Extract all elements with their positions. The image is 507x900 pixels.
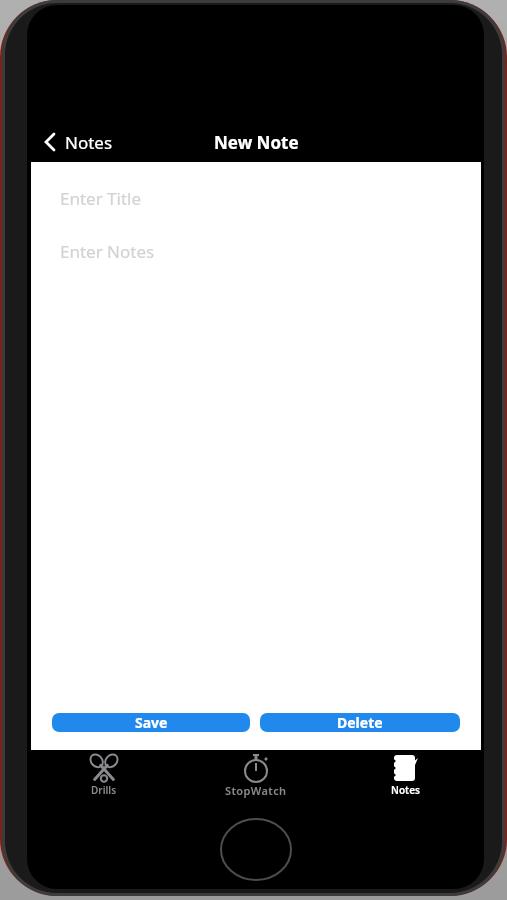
- staticText: Save: [135, 713, 168, 732]
- button[interactable]: Save: [52, 713, 250, 732]
- staticText: Enter Title: [60, 187, 142, 210]
- staticText: New Note: [214, 131, 299, 154]
- button[interactable]: Drills: [64, 752, 144, 798]
- staticText: StopWatch: [225, 783, 287, 798]
- button[interactable]: Delete: [260, 713, 460, 732]
- button[interactable]: Notes: [365, 752, 445, 798]
- staticText: Drills: [91, 783, 117, 797]
- button[interactable]: StopWatch: [216, 752, 296, 798]
- staticText: Delete: [337, 713, 383, 732]
- staticText: Enter Notes: [60, 240, 155, 263]
- button[interactable]: Enter Notes: [60, 237, 452, 265]
- staticText: Notes: [65, 131, 113, 154]
- staticText: Notes: [391, 783, 420, 797]
- button[interactable]: Enter Title: [60, 184, 452, 212]
- button[interactable]: Notes: [40, 126, 130, 158]
